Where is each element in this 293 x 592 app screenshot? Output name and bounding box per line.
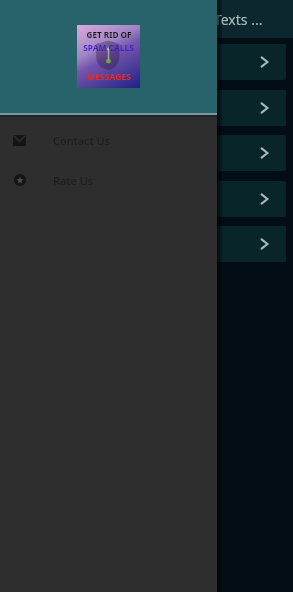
staticText: Block Spam Calls and Texts ...: [71, 10, 263, 29]
button[interactable]: [8, 135, 286, 171]
button[interactable]: Rate Us: [0, 160, 217, 200]
button[interactable]: [8, 44, 286, 80]
button[interactable]: [8, 181, 286, 217]
staticText: Contact Us: [53, 133, 111, 148]
button[interactable]: Contact Us: [0, 120, 217, 160]
button[interactable]: [8, 226, 286, 262]
staticText: MESSAGES: [87, 71, 131, 83]
staticText: GET RID OF: [86, 29, 132, 40]
button[interactable]: [8, 90, 286, 126]
staticText: Rate Us: [53, 173, 94, 188]
staticText: SPAM CALLS: [83, 42, 134, 53]
